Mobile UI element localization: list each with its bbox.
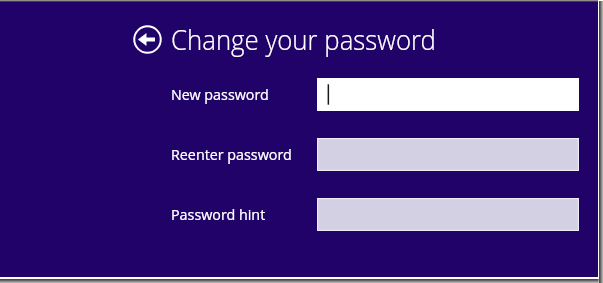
staticText: Change your password — [171, 21, 436, 58]
button[interactable]: Back — [133, 25, 162, 54]
button[interactable]: Password hint — [317, 198, 579, 231]
button[interactable]: Reenter password — [171, 138, 292, 170]
staticText: New password — [171, 85, 269, 104]
staticText: Reenter password — [171, 145, 292, 164]
button[interactable]: New password — [317, 78, 579, 111]
button[interactable]: Password hint — [171, 198, 266, 230]
button[interactable]: New password — [171, 78, 269, 110]
staticText: Password hint — [171, 205, 266, 224]
button[interactable]: Reenter password — [317, 138, 579, 171]
